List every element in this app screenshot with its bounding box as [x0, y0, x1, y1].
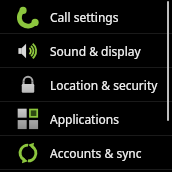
other: Location and security: [16, 73, 40, 97]
other: Sound and display: [16, 39, 40, 63]
button[interactable]: Call settings: [0, 0, 172, 33]
staticText: Location & security: [50, 77, 158, 93]
staticText: Call settings: [50, 9, 119, 25]
other: Call settings: [16, 5, 40, 29]
staticText: Accounts & sync: [50, 145, 142, 161]
other: Applications: [16, 107, 40, 131]
button[interactable]: Sound and display: [0, 34, 172, 67]
other: Accounts and sync: [16, 141, 40, 165]
button[interactable]: Location and security: [0, 68, 172, 101]
button[interactable]: Applications: [0, 102, 172, 135]
staticText: Sound & display: [50, 43, 141, 59]
staticText: Applications: [50, 111, 119, 127]
button[interactable]: Accounts and sync: [0, 136, 172, 169]
